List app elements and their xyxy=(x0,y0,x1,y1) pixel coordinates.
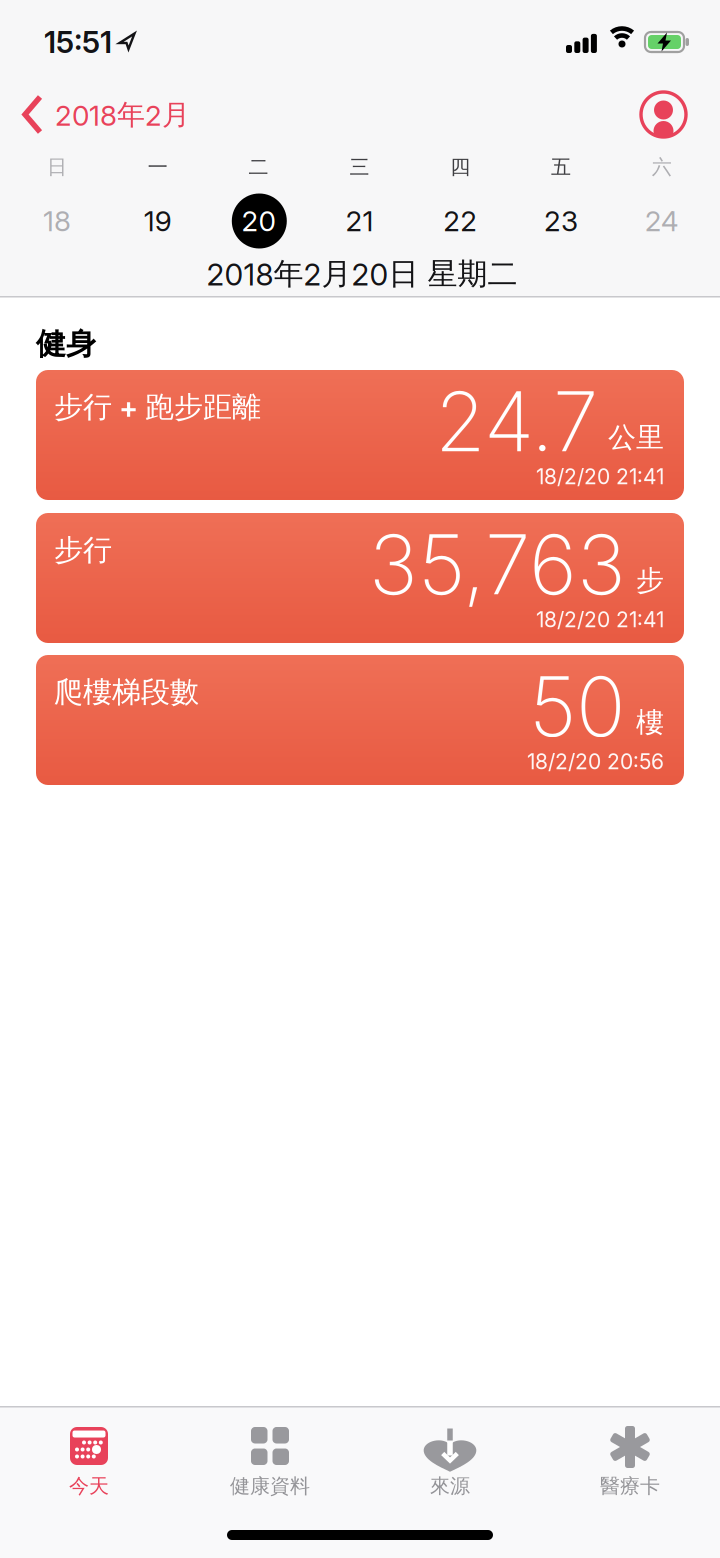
staticText: 今天 xyxy=(69,1473,109,1499)
staticText: 18 xyxy=(43,204,71,238)
staticText: 20 xyxy=(242,204,276,238)
staticText: 步 xyxy=(636,563,664,598)
staticText: 22 xyxy=(443,204,477,238)
staticText: 步行 + 跑步距離 xyxy=(54,389,261,425)
staticText: 日 xyxy=(47,154,67,180)
staticText: 五 xyxy=(551,154,571,180)
staticText: 15:51 xyxy=(44,24,112,60)
staticText: 步行 xyxy=(54,532,112,568)
staticText: 18/2/20 21:41 xyxy=(536,464,664,489)
staticText: 2018年2月 xyxy=(55,97,190,133)
staticText: 24 xyxy=(645,204,679,238)
staticText: 來源 xyxy=(430,1473,470,1499)
staticText: 35,763 xyxy=(369,515,626,614)
staticText: 二 xyxy=(249,154,269,180)
staticText: 21 xyxy=(345,204,373,238)
staticText: 50 xyxy=(529,657,626,756)
staticText: 19 xyxy=(144,204,172,238)
staticText: 2018年2月20日 星期二 xyxy=(206,255,517,293)
staticText: 三 xyxy=(349,154,369,180)
staticText: 18/2/20 20:56 xyxy=(527,749,664,774)
staticText: 樓 xyxy=(636,705,664,740)
staticText: 24.7 xyxy=(435,372,598,471)
staticText: 公里 xyxy=(608,420,664,455)
staticText: 18/2/20 21:41 xyxy=(536,607,664,632)
staticText: 六 xyxy=(652,154,672,180)
staticText: 醫療卡 xyxy=(600,1473,660,1499)
staticText: 四 xyxy=(450,154,470,180)
staticText: 健康資料 xyxy=(230,1473,310,1499)
staticText: 一 xyxy=(148,154,168,180)
staticText: 23 xyxy=(544,204,578,238)
staticText: 健身 xyxy=(36,325,96,363)
staticText: 爬樓梯段數 xyxy=(54,674,199,710)
